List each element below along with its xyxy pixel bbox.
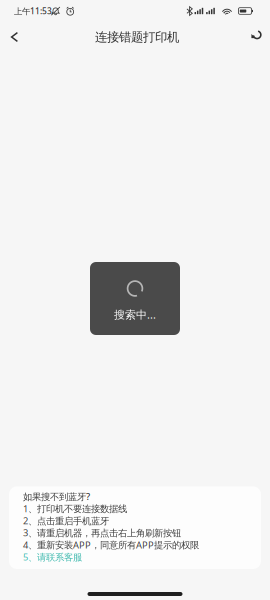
button[interactable]: Refresh [242, 22, 270, 52]
staticText: 1、打印机不要连接数据线 [23, 502, 127, 515]
button[interactable]: Back [0, 22, 28, 52]
staticText: 搜索中... [114, 307, 156, 322]
staticText: 连接错题打印机 [95, 29, 179, 45]
button[interactable]: 5、请联系客服 [23, 551, 82, 563]
staticText: 4、重新安装APP，同意所有APP提示的权限 [23, 538, 199, 551]
staticText: 5、请联系客服 [23, 551, 82, 563]
staticText: 上午11:53 [14, 5, 52, 17]
staticText: 3、请重启机器，再点击右上角刷新按钮 [23, 526, 181, 539]
staticText: 如果搜不到蓝牙? [23, 490, 90, 503]
staticText: 2、点击重启手机蓝牙 [23, 514, 109, 527]
